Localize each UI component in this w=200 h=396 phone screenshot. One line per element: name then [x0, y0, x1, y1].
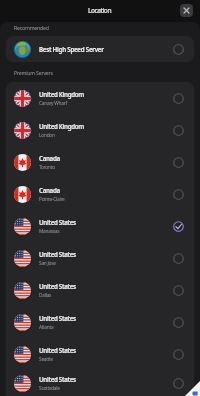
staticText: Best High Speed Server	[39, 45, 173, 53]
staticText: Toronto	[39, 164, 55, 171]
button[interactable]: United States	[6, 338, 194, 370]
button[interactable]: United States	[6, 242, 194, 274]
staticText: Dallas	[39, 292, 52, 299]
staticText: Atlanta	[39, 324, 54, 331]
button[interactable]: United States	[6, 306, 194, 338]
staticText: Canada	[39, 154, 60, 162]
button[interactable]: Best High Speed Server	[6, 36, 194, 62]
staticText: Canary Wharf	[39, 100, 67, 107]
staticText: Recommended	[14, 24, 49, 31]
button[interactable]: United Kingdom	[6, 82, 194, 114]
staticText: United Kingdom	[39, 90, 84, 98]
staticText: United States	[39, 314, 76, 322]
button[interactable]: United Kingdom	[6, 114, 194, 146]
button[interactable]: United States	[6, 210, 194, 242]
staticText: London	[39, 132, 55, 139]
staticText: United States	[39, 375, 76, 383]
staticText: United States	[39, 346, 76, 354]
button[interactable]: Canada	[6, 146, 194, 178]
staticText: Pointe-Claire	[39, 196, 65, 203]
staticText: Manassas	[39, 228, 60, 235]
staticText: Scottsdale	[39, 385, 60, 392]
button[interactable]: Canada	[6, 178, 194, 210]
staticText: Seattle	[39, 356, 53, 363]
staticText: United States	[39, 282, 76, 290]
button[interactable]: United States	[6, 274, 194, 306]
staticText: Canada	[39, 186, 60, 194]
staticText: United Kingdom	[39, 122, 84, 130]
button[interactable]	[180, 4, 193, 17]
staticText: Premium Servers	[14, 69, 53, 76]
staticText: Location	[88, 6, 112, 15]
staticText: United States	[39, 218, 76, 226]
staticText: United States	[39, 250, 76, 258]
button[interactable]: United States	[6, 370, 194, 396]
staticText: San Jose	[39, 260, 56, 267]
